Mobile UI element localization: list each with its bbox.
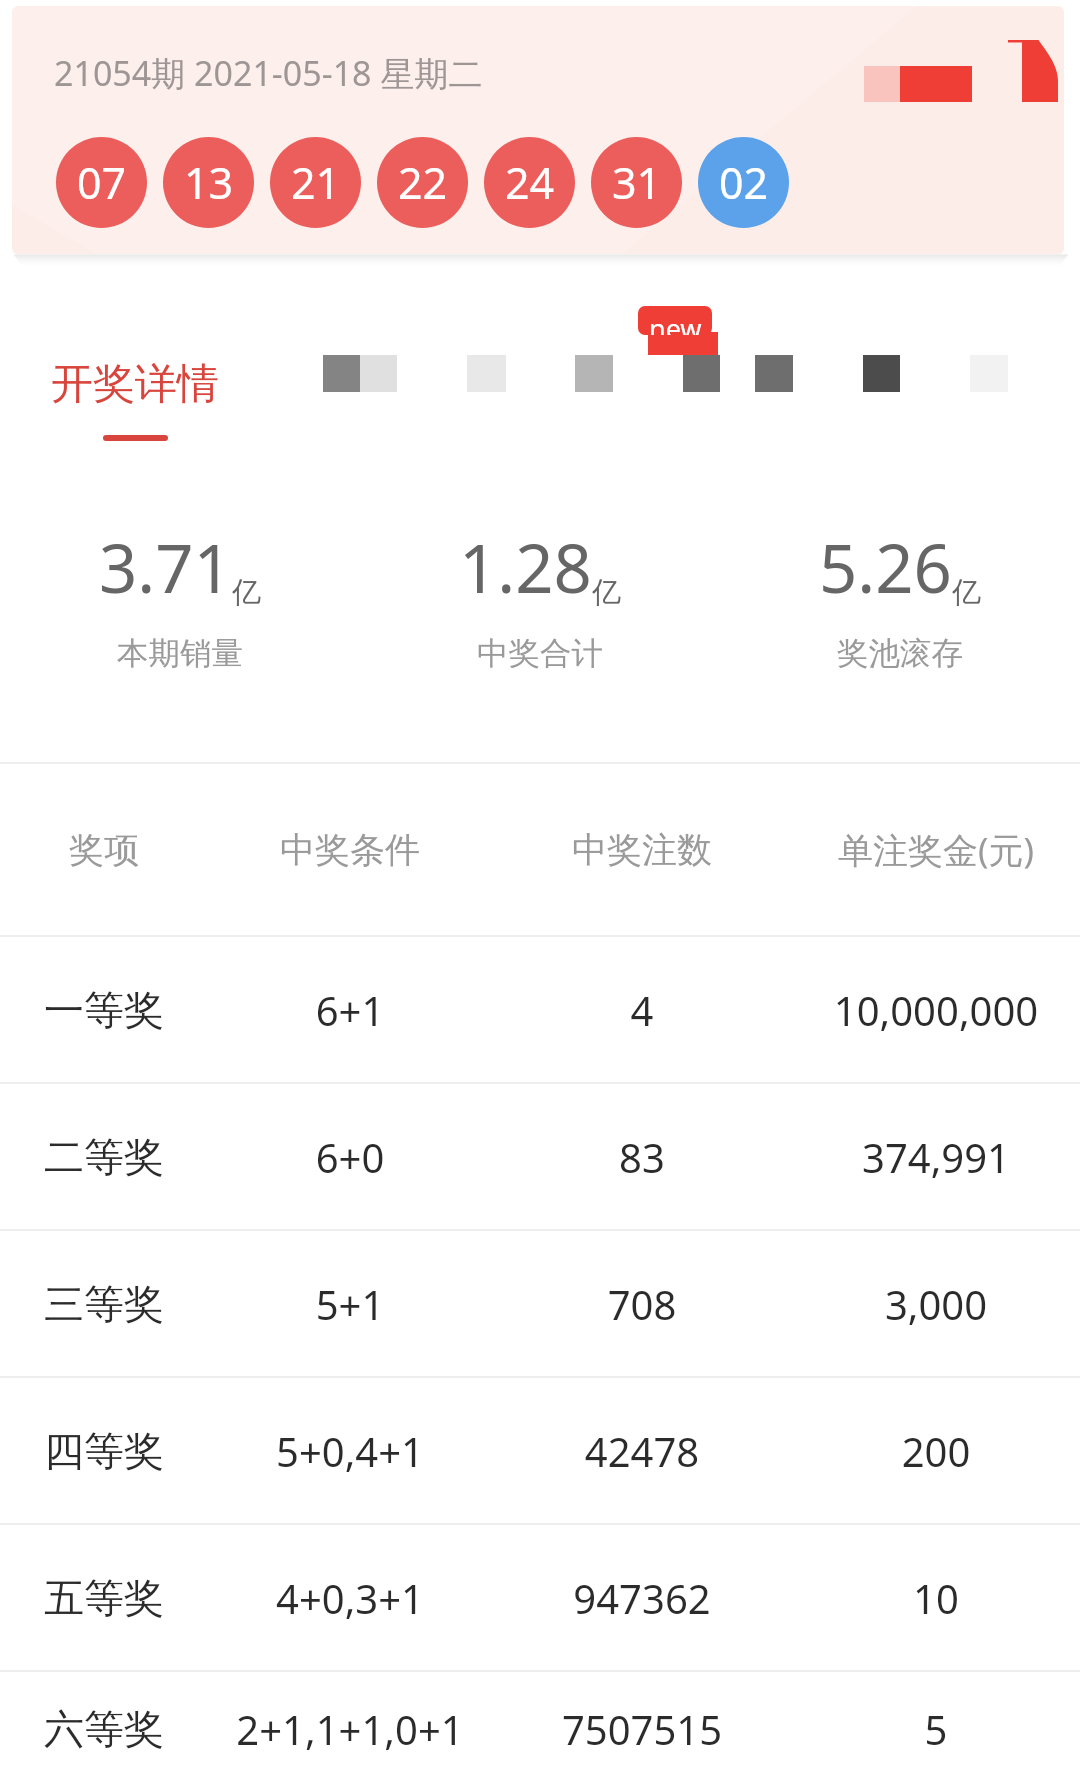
button[interactable]: 奖项: [0, 764, 1080, 935]
staticText: 4: [492, 983, 792, 1037]
staticText: 亿: [232, 574, 261, 611]
staticText: 5+1: [208, 1277, 492, 1331]
staticText: 四等奖: [0, 1426, 208, 1476]
staticText: 374,991: [792, 1130, 1080, 1184]
staticText: 六等奖: [0, 1704, 208, 1754]
staticText: 5+0,4+1: [208, 1424, 492, 1478]
staticText: 6+0: [208, 1130, 492, 1184]
button[interactable]: 3.71: [0, 521, 360, 674]
staticText: 4+0,3+1: [208, 1571, 492, 1625]
staticText: 中奖合计: [477, 634, 603, 674]
staticText: 3.71: [99, 521, 232, 612]
staticText: 三等奖: [0, 1279, 208, 1329]
button[interactable]: 开奖详情: [51, 358, 219, 441]
staticText: 1.28: [459, 521, 592, 612]
staticText: 708: [492, 1277, 792, 1331]
staticText: 6+1: [208, 983, 492, 1037]
staticText: 10,000,000: [792, 983, 1080, 1037]
button[interactable]: Number 31: [591, 137, 682, 228]
staticText: 5: [792, 1702, 1080, 1756]
staticText: 本期销量: [117, 634, 243, 674]
staticText: 奖池滚存: [837, 634, 963, 674]
staticText: 22: [398, 153, 448, 212]
staticText: 二等奖: [0, 1132, 208, 1182]
button[interactable]: 1.28: [360, 521, 720, 674]
button[interactable]: new: [638, 306, 712, 335]
staticText: 947362: [492, 1571, 792, 1625]
staticText: 200: [792, 1424, 1080, 1478]
button[interactable]: 二等奖: [0, 1084, 1080, 1229]
button[interactable]: 六等奖: [0, 1672, 1080, 1786]
staticText: 中奖注数: [492, 828, 792, 872]
staticText: new: [649, 310, 702, 335]
staticText: 亿: [592, 574, 621, 611]
staticText: 42478: [492, 1424, 792, 1478]
staticText: 13: [184, 153, 234, 212]
button[interactable]: Number 07: [56, 137, 147, 228]
staticText: 一等奖: [0, 985, 208, 1035]
staticText: 中奖条件: [208, 828, 492, 872]
button[interactable]: 五等奖: [0, 1525, 1080, 1670]
staticText: 奖项: [0, 828, 208, 872]
staticText: 07: [77, 153, 127, 212]
button[interactable]: Number 13: [163, 137, 254, 228]
staticText: 21: [291, 153, 341, 212]
staticText: 开奖详情: [51, 358, 219, 411]
staticText: 24: [505, 153, 555, 212]
staticText: 02: [719, 153, 769, 212]
staticText: 3,000: [792, 1277, 1080, 1331]
button[interactable]: Number 02: [698, 137, 789, 228]
staticText: 单注奖金(元): [792, 826, 1080, 874]
staticText: 2+1,1+1,0+1: [208, 1702, 492, 1756]
button[interactable]: 三等奖: [0, 1231, 1080, 1376]
staticText: 21054期 2021-05-18 星期二: [54, 50, 483, 96]
staticText: 亿: [952, 574, 981, 611]
button[interactable]: Number 21: [270, 137, 361, 228]
button[interactable]: 四等奖: [0, 1378, 1080, 1523]
staticText: 31: [612, 153, 662, 212]
staticText: 83: [492, 1130, 792, 1184]
button[interactable]: Number 24: [484, 137, 575, 228]
button[interactable]: Number 22: [377, 137, 468, 228]
staticText: 5.26: [819, 521, 952, 612]
button[interactable]: 一等奖: [0, 937, 1080, 1082]
button[interactable]: 5.26: [720, 521, 1080, 674]
staticText: 五等奖: [0, 1573, 208, 1623]
staticText: 7507515: [492, 1702, 792, 1756]
staticText: 10: [792, 1571, 1080, 1625]
